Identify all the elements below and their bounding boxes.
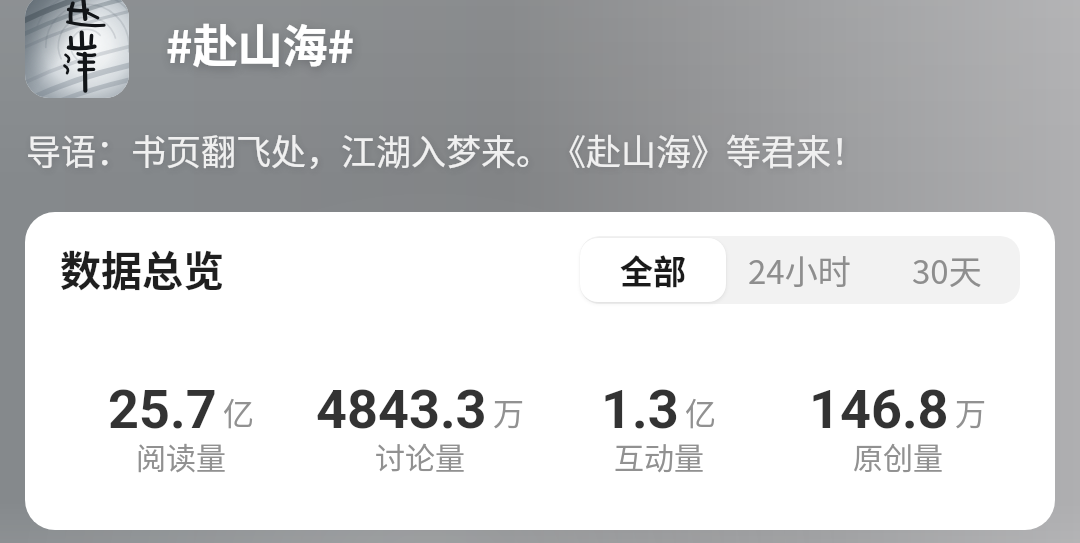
staticText: 146.8 — [809, 378, 949, 441]
staticText: 数据总览 — [60, 238, 224, 297]
staticText: 1.3 — [601, 378, 679, 441]
staticText: 亿 — [223, 389, 254, 434]
button[interactable]: 4843.3 — [300, 378, 539, 484]
staticText: 互动量 — [614, 434, 704, 477]
button[interactable]: 24小时 — [726, 236, 873, 304]
staticText: 原创量 — [853, 434, 943, 477]
staticText: #赴山海# — [166, 11, 355, 76]
staticText: 讨论量 — [375, 434, 465, 477]
staticText: 4843.3 — [316, 378, 487, 441]
button[interactable]: 30天 — [873, 236, 1020, 304]
staticText: 25.7 — [108, 378, 217, 441]
staticText: 导语：书页翻飞处，江湖入梦来。《赴山海》等君来！ — [26, 124, 867, 175]
button[interactable]: 1.3 — [539, 378, 778, 484]
button[interactable]: 话题封面图片 — [25, 0, 129, 98]
staticText: 万 — [493, 389, 524, 434]
staticText: 万 — [955, 389, 986, 434]
button[interactable]: #赴山海# — [160, 4, 361, 83]
button[interactable]: 25.7 — [61, 378, 300, 484]
staticText: 全部 — [620, 246, 686, 294]
button[interactable]: 146.8 — [778, 378, 1017, 484]
staticText: 阅读量 — [136, 434, 226, 477]
staticText: 24小时 — [748, 246, 851, 294]
staticText: 亿 — [685, 389, 716, 434]
staticText: 30天 — [912, 246, 982, 294]
button[interactable]: 全部 — [580, 238, 726, 302]
